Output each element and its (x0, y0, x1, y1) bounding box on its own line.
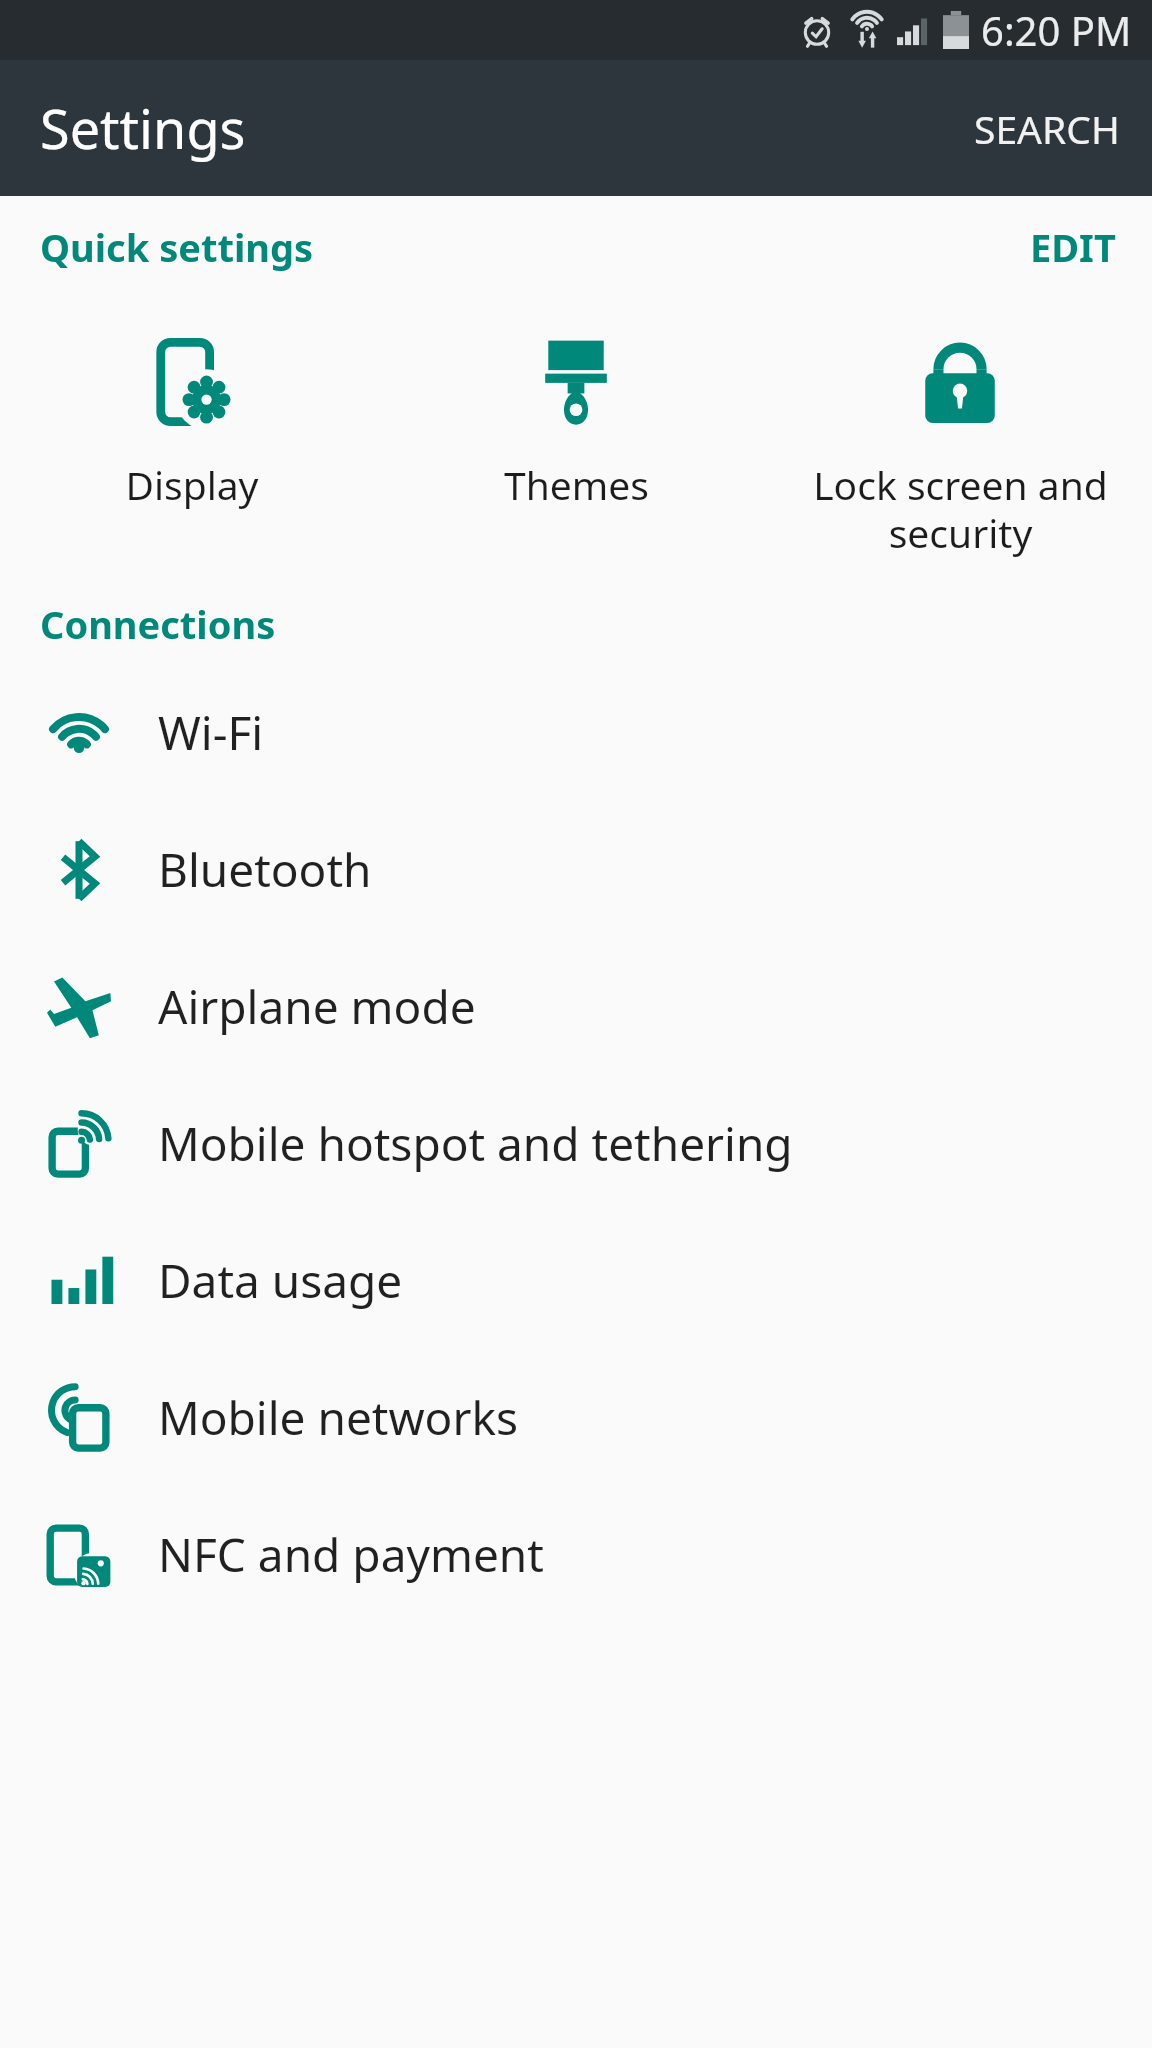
staticText: Display (125, 458, 259, 511)
other: Airplane mode (47, 975, 111, 1039)
staticText: Quick settings (40, 221, 314, 273)
staticText: 6:20 PM (981, 3, 1132, 57)
other: Hotspot (47, 1112, 111, 1176)
staticText: Wi-Fi (158, 701, 264, 764)
other: Data usage (47, 1249, 111, 1313)
button[interactable]: Wi-Fi (0, 664, 1152, 801)
other: Mobile networks (47, 1386, 111, 1450)
staticText: Themes (504, 458, 649, 511)
button[interactable]: Data usage (0, 1212, 1152, 1349)
staticText: Bluetooth (158, 838, 372, 901)
staticText: SEARCH (974, 102, 1120, 155)
other: Wi-Fi (47, 701, 111, 765)
button[interactable]: Themes (384, 298, 768, 560)
button[interactable]: Display (0, 298, 384, 560)
staticText: Airplane mode (158, 975, 476, 1038)
staticText: Mobile hotspot and tethering (158, 1112, 793, 1175)
button[interactable]: NFC (0, 1486, 1152, 1623)
other: NFC (47, 1523, 111, 1587)
button[interactable]: Hotspot (0, 1075, 1152, 1212)
button[interactable]: Mobile networks (0, 1349, 1152, 1486)
button[interactable]: Airplane mode (0, 938, 1152, 1075)
button[interactable]: SEARCH (942, 60, 1152, 196)
staticText: Settings (40, 91, 246, 165)
staticText: Lock screen and security (813, 458, 1108, 560)
button[interactable]: EDIT (994, 196, 1152, 298)
staticText: EDIT (1030, 221, 1116, 273)
staticText: Data usage (158, 1249, 403, 1312)
staticText: Connections (40, 598, 276, 650)
button[interactable]: Bluetooth (0, 801, 1152, 938)
staticText: Mobile networks (158, 1386, 519, 1449)
other: Bluetooth (47, 838, 111, 902)
button[interactable]: Lock screen and security (768, 298, 1152, 560)
staticText: NFC and payment (158, 1523, 544, 1586)
